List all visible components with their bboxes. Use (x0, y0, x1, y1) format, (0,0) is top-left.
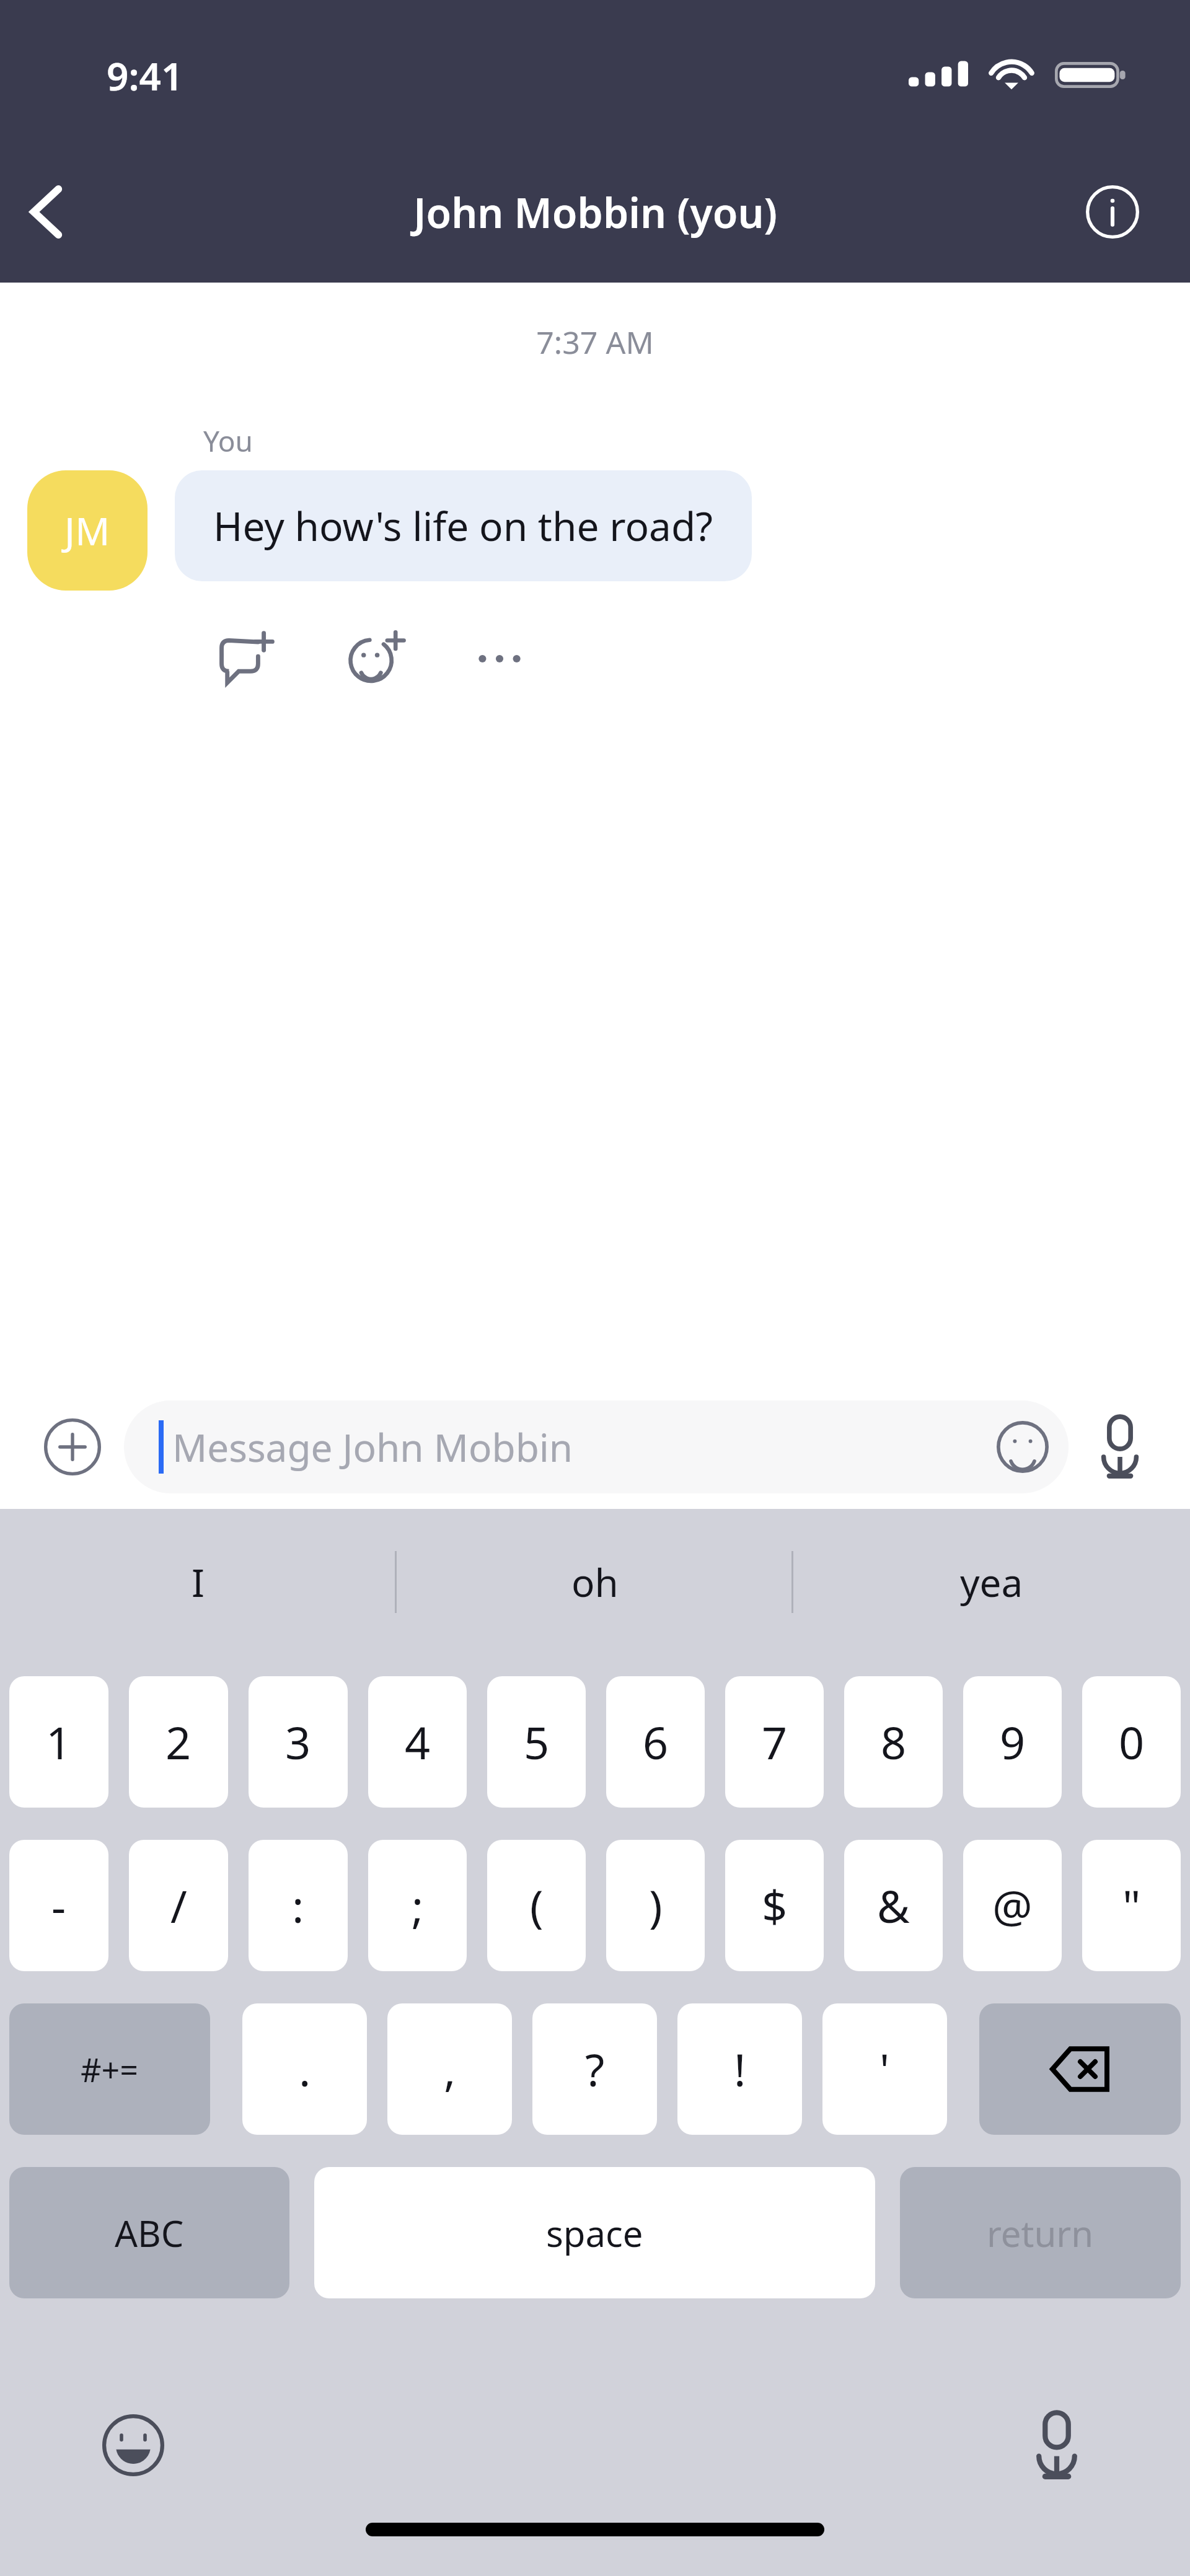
staticText: 9 (1000, 1712, 1026, 1772)
staticText: I (192, 1556, 205, 1608)
staticText: , (444, 2039, 456, 2099)
staticText: yea (960, 1556, 1023, 1608)
button[interactable]: Emoji keyboard (93, 2405, 174, 2486)
button[interactable]: return (900, 2167, 1181, 2298)
button[interactable]: ; (368, 1840, 467, 1971)
staticText: ) (649, 1875, 663, 1936)
staticText: 6 (643, 1712, 669, 1772)
staticText: / (170, 1875, 187, 1936)
staticText: ! (734, 2039, 746, 2099)
staticText: return (987, 2209, 1094, 2257)
staticText: ( (530, 1875, 544, 1936)
button[interactable]: Reply (203, 615, 290, 702)
staticText: 7:37 AM (0, 321, 1190, 363)
staticText: 5 (524, 1712, 550, 1772)
button[interactable]: @ (963, 1840, 1062, 1971)
button[interactable]: 9 (963, 1676, 1062, 1808)
button[interactable]: #+= (9, 2003, 210, 2135)
staticText: John Mobbin (you) (413, 184, 777, 240)
button[interactable]: Add attachment (32, 1407, 113, 1487)
button[interactable]: 1 (9, 1676, 108, 1808)
button[interactable]: / (129, 1840, 228, 1971)
button[interactable]: Back (0, 165, 93, 258)
staticText: 8 (881, 1712, 907, 1772)
button[interactable]: Backspace (979, 2003, 1181, 2135)
staticText: ABC (115, 2209, 184, 2257)
button[interactable]: ) (606, 1840, 705, 1971)
button[interactable]: Message John Mobbin (124, 1400, 1069, 1493)
button[interactable]: : (249, 1840, 348, 1971)
staticText: Hey how's life on the road? (213, 499, 713, 553)
button[interactable]: Details (1072, 172, 1153, 252)
button[interactable]: More options (456, 615, 543, 702)
button[interactable]: ! (677, 2003, 802, 2135)
staticText: 7 (762, 1712, 788, 1772)
staticText: 3 (285, 1712, 311, 1772)
button[interactable]: Emoji (985, 1410, 1060, 1484)
staticText: & (877, 1875, 910, 1936)
button[interactable]: . (242, 2003, 367, 2135)
staticText: " (1122, 1875, 1141, 1936)
staticText: ' (879, 2039, 890, 2099)
button[interactable]: Dictation (1016, 2405, 1097, 2486)
button[interactable]: , (387, 2003, 512, 2135)
button[interactable]: " (1082, 1840, 1181, 1971)
staticText: 0 (1119, 1712, 1145, 1772)
staticText: 1 (46, 1712, 72, 1772)
staticText: #+= (81, 2047, 139, 2091)
button[interactable]: 5 (487, 1676, 586, 1808)
button[interactable]: ( (487, 1840, 586, 1971)
button[interactable]: oh (397, 1509, 793, 1655)
button[interactable]: 6 (606, 1676, 705, 1808)
button[interactable]: ? (532, 2003, 657, 2135)
button[interactable]: yea (793, 1509, 1190, 1655)
button[interactable]: 7 (725, 1676, 824, 1808)
button[interactable]: Add reaction (332, 615, 419, 702)
button[interactable]: 2 (129, 1676, 228, 1808)
staticText: JM (64, 504, 110, 556)
button[interactable]: Voice message (1080, 1407, 1160, 1487)
staticText: - (51, 1875, 66, 1936)
button[interactable]: $ (725, 1840, 824, 1971)
staticText: space (546, 2209, 643, 2257)
staticText: Message John Mobbin (172, 1421, 573, 1473)
button[interactable]: - (9, 1840, 108, 1971)
staticText: You (203, 421, 253, 460)
button[interactable]: & (844, 1840, 943, 1971)
staticText: ; (412, 1875, 424, 1936)
staticText: : (292, 1875, 304, 1936)
staticText: ? (585, 2039, 605, 2099)
staticText: $ (762, 1875, 788, 1936)
button[interactable]: ABC (9, 2167, 289, 2298)
staticText: 2 (165, 1712, 192, 1772)
button[interactable]: space (314, 2167, 875, 2298)
button[interactable]: Hey how's life on the road? (175, 470, 752, 581)
staticText: 9:41 (107, 50, 183, 102)
staticText: oh (571, 1556, 619, 1608)
button[interactable]: I (0, 1509, 397, 1655)
button[interactable]: 4 (368, 1676, 467, 1808)
button[interactable]: 8 (844, 1676, 943, 1808)
button[interactable]: 0 (1082, 1676, 1181, 1808)
staticText: @ (992, 1875, 1033, 1936)
staticText: 4 (405, 1712, 431, 1772)
staticText: . (299, 2039, 311, 2099)
button[interactable]: ' (822, 2003, 947, 2135)
button[interactable]: 3 (249, 1676, 348, 1808)
